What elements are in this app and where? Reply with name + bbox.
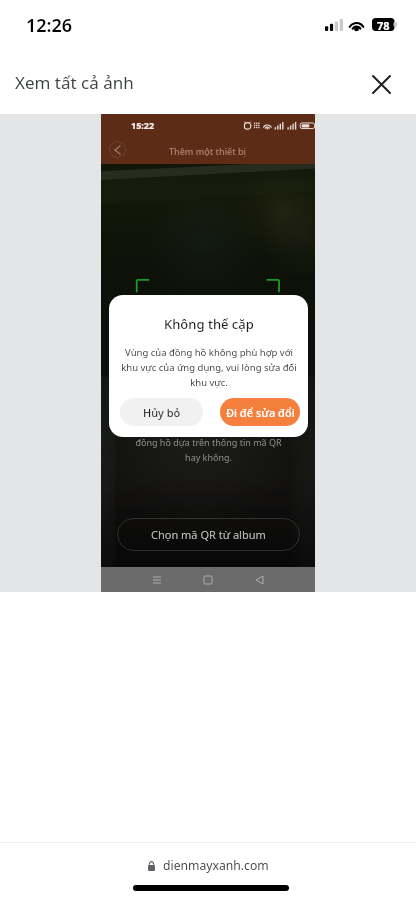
button[interactable]: Back [109, 141, 126, 158]
button[interactable]: Home [197, 569, 219, 591]
button[interactable]: Hủy bỏ [120, 398, 203, 426]
staticText: 15:22 [131, 119, 155, 131]
staticText: Chọn mã QR từ album [151, 527, 266, 542]
staticText: 12:26 [26, 13, 73, 38]
staticText: Xem tất cả ảnh [15, 71, 134, 94]
staticText: Đi để sửa đổi [226, 405, 295, 420]
staticText: 78 [377, 18, 390, 31]
button[interactable]: Recents [146, 569, 168, 591]
button[interactable]: Back [248, 569, 270, 591]
staticText: Vùng của đồng hồ không phù hợp với khu v… [121, 346, 297, 389]
button[interactable]: Đi để sửa đổi [220, 398, 300, 426]
staticText: dienmayxanh.com [163, 857, 269, 874]
button[interactable]: Close [358, 61, 404, 107]
staticText: Hủy bỏ [143, 405, 181, 420]
button[interactable]: Chọn mã QR từ album [117, 518, 300, 551]
staticText: hay không. [185, 451, 232, 463]
staticText: Không thể cặp [164, 315, 254, 333]
staticText: Thêm một thiết bị [169, 145, 247, 157]
staticText: đồng hồ dựa trên thông tin mã QR [135, 436, 282, 448]
